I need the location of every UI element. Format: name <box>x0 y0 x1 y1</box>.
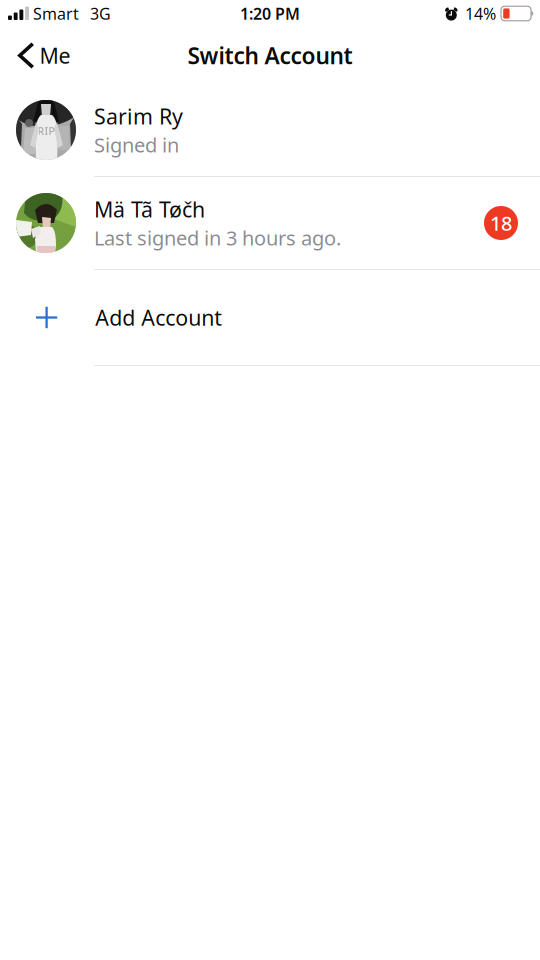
button[interactable]: RIP <box>0 84 540 177</box>
staticText: 14% <box>465 3 496 24</box>
staticText: 18 <box>490 210 512 236</box>
staticText: Sarim Ry <box>94 102 183 130</box>
staticText: 1:20 PM <box>240 3 300 24</box>
staticText: Switch Account <box>187 40 352 70</box>
staticText: Signed in <box>94 131 179 158</box>
staticText: Last signed in 3 hours ago. <box>94 224 341 251</box>
button[interactable]: Mä Tã Tøčh <box>0 177 540 270</box>
staticText: Add Account <box>95 303 222 332</box>
staticText: RIP <box>37 124 54 138</box>
button[interactable]: Add Account <box>0 270 540 366</box>
staticText: Me <box>39 41 70 70</box>
button[interactable]: Me <box>0 35 82 76</box>
staticText: 3G <box>90 3 111 24</box>
staticText: Mä Tã Tøčh <box>94 195 205 223</box>
staticText: Smart <box>33 3 79 24</box>
